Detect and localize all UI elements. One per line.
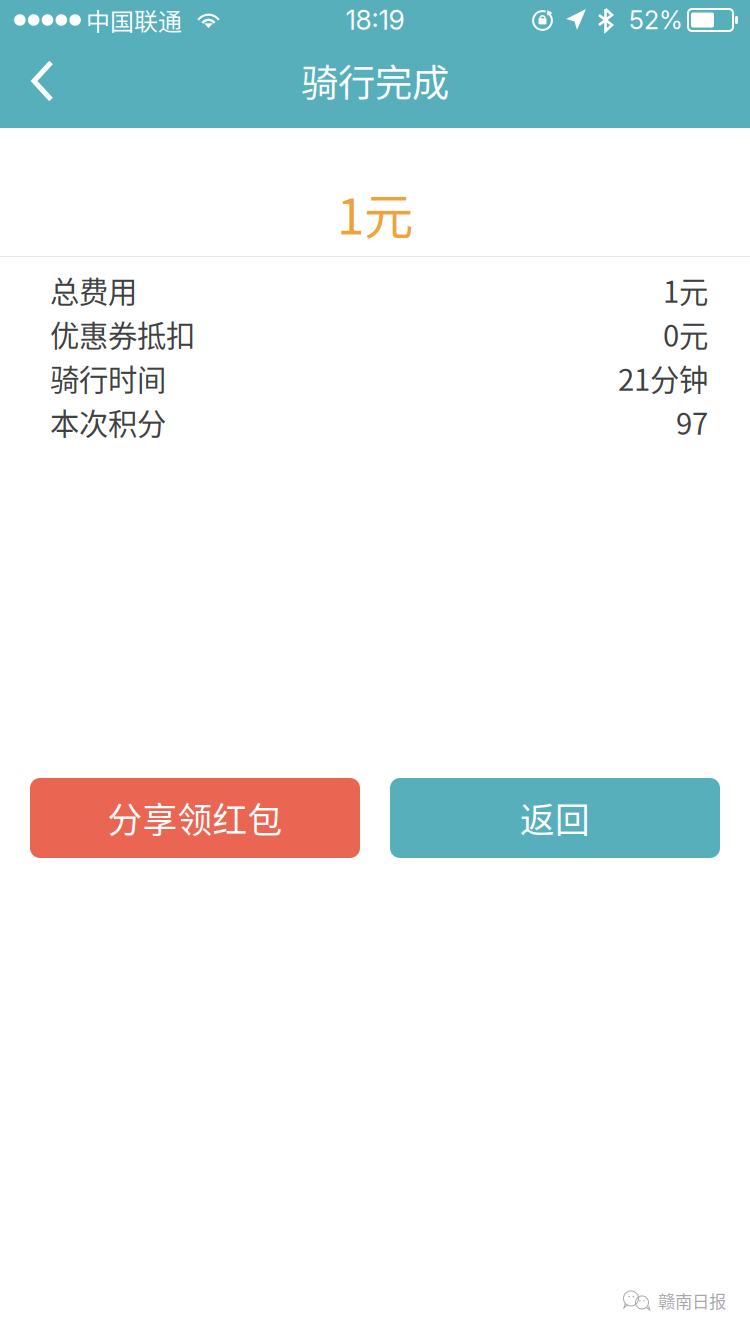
staticText: 1元: [663, 269, 708, 311]
button[interactable]: 返回: [390, 778, 720, 858]
staticText: 21分钟: [618, 357, 708, 399]
staticText: 骑行完成: [301, 53, 449, 108]
button[interactable]: 返回: [0, 40, 75, 128]
staticText: 0元: [663, 313, 708, 355]
button[interactable]: 分享领红包: [30, 778, 360, 858]
staticText: 分享领红包: [107, 793, 282, 843]
staticText: 返回: [520, 793, 590, 843]
staticText: 总费用: [50, 269, 137, 311]
staticText: 18:19: [345, 4, 404, 36]
staticText: 本次积分: [50, 401, 166, 443]
staticText: 1元: [337, 177, 413, 249]
staticText: 优惠券抵扣: [50, 313, 195, 355]
staticText: 赣南日报: [658, 1288, 726, 1313]
staticText: 97: [676, 401, 708, 443]
staticText: 骑行时间: [50, 357, 166, 399]
staticText: 52%: [629, 5, 683, 35]
staticText: 中国联通: [86, 3, 182, 37]
